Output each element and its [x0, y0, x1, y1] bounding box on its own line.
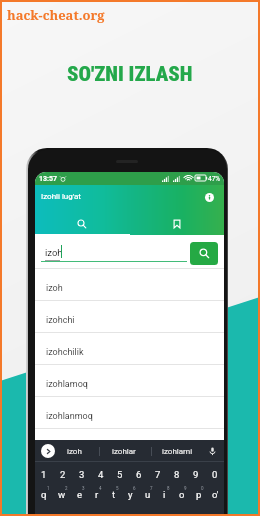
staticText: 1 [41, 469, 47, 480]
button[interactable]: 6 [122, 486, 139, 516]
staticText: 0 [201, 486, 204, 491]
staticText: 3 [79, 469, 85, 480]
button[interactable]: izoh [35, 269, 224, 301]
button[interactable]: Voice input [205, 444, 219, 458]
staticText: izohlanmoq [46, 411, 93, 422]
staticText: o' [212, 489, 219, 500]
button[interactable]: 9 [186, 462, 205, 486]
button[interactable]: Saved tab [129, 211, 224, 235]
staticText: izohchilik [46, 347, 84, 358]
staticText: Izohli lug'at [41, 192, 81, 201]
button[interactable]: 9 [173, 486, 190, 516]
staticText: 0 [212, 469, 218, 480]
staticText: 8 [167, 486, 170, 491]
button[interactable]: 7 [148, 462, 167, 486]
button[interactable]: 2 [53, 486, 71, 516]
button[interactable]: 0 [205, 462, 224, 486]
staticText: t [112, 489, 116, 500]
button[interactable]: 1 [35, 462, 53, 486]
staticText: 8 [174, 469, 180, 480]
staticText: 4 [99, 486, 102, 491]
staticText: izohlarni [162, 447, 193, 456]
button[interactable]: 5 [105, 486, 122, 516]
staticText: 9 [184, 486, 187, 491]
button[interactable]: izohchilik [35, 333, 224, 365]
staticText: 4 [98, 469, 104, 480]
button[interactable]: 3 [72, 462, 91, 486]
staticText: 9 [193, 469, 199, 480]
staticText: 1 [47, 486, 50, 491]
staticText: 5 [116, 486, 119, 491]
button[interactable]: izoh [50, 441, 98, 462]
button[interactable]: 7 [139, 486, 156, 516]
staticText: SO'ZNI IZLASH [67, 62, 193, 86]
staticText: p [196, 489, 202, 500]
button[interactable]: izohlar [100, 441, 148, 462]
button[interactable]: Search [190, 242, 218, 265]
staticText: izoh [67, 447, 82, 456]
staticText: e [77, 489, 83, 500]
button[interactable]: 8 [156, 486, 173, 516]
button[interactable]: 4 [91, 462, 110, 486]
button[interactable]: 1 [35, 486, 53, 516]
staticText: izoh [45, 247, 63, 258]
button[interactable]: 3 [71, 486, 88, 516]
staticText: 47% [208, 175, 221, 183]
staticText: izohchi [46, 315, 75, 326]
staticText: o [179, 489, 185, 500]
staticText: izohlar [112, 447, 136, 456]
button[interactable]: izohlanmoq [35, 397, 224, 429]
staticText: 6 [133, 486, 136, 491]
button[interactable]: o' [207, 486, 224, 516]
button[interactable]: 8 [167, 462, 186, 486]
staticText: y [128, 489, 133, 500]
staticText: izohlamoq [46, 379, 88, 390]
staticText: 6 [136, 469, 142, 480]
button[interactable]: izohlarni [153, 441, 201, 462]
staticText: q [41, 489, 47, 500]
staticText: i [163, 489, 166, 500]
staticText: u [145, 489, 151, 500]
staticText: hack-cheat.org [7, 6, 105, 24]
staticText: 2 [60, 469, 66, 480]
staticText: 3 [82, 486, 85, 491]
button[interactable]: Search tab [35, 211, 129, 235]
staticText: w [58, 489, 66, 500]
staticText: 5 [117, 469, 123, 480]
staticText: 7 [155, 469, 161, 480]
staticText: 2 [65, 486, 68, 491]
button[interactable]: 6 [129, 462, 148, 486]
button[interactable]: Info [201, 189, 217, 205]
button[interactable]: izohchi [35, 301, 224, 333]
staticText: 13:57 [39, 175, 58, 183]
button[interactable]: 2 [53, 462, 72, 486]
button[interactable]: 5 [110, 462, 129, 486]
staticText: 7 [150, 486, 153, 491]
button[interactable]: izohlamoq [35, 365, 224, 397]
staticText: r [95, 489, 99, 500]
staticText: izoh [46, 283, 63, 294]
button[interactable]: More suggestions [41, 444, 55, 458]
button[interactable]: 4 [88, 486, 105, 516]
button[interactable]: 0 [190, 486, 207, 516]
